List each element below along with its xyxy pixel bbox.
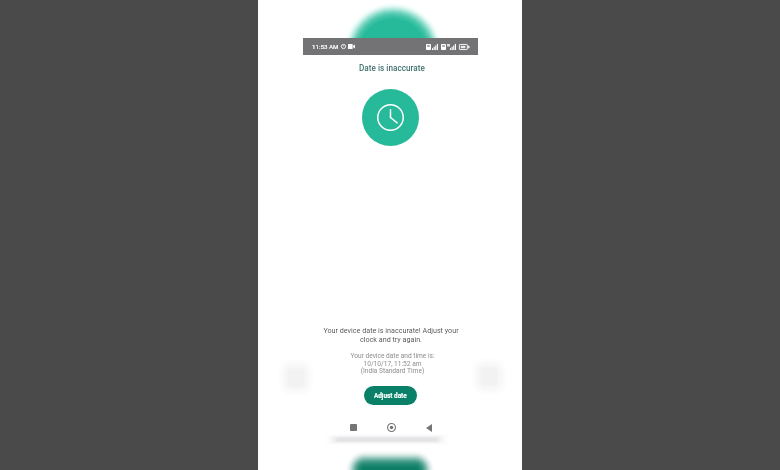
staticText: 11:53 AM: [312, 43, 339, 50]
button[interactable]: Recent apps: [335, 417, 371, 438]
button[interactable]: Adjust date: [364, 386, 417, 405]
staticText: Adjust date: [374, 392, 407, 400]
staticText: Your device date and time is: 10/10/17, …: [350, 352, 435, 374]
button[interactable]: Back: [411, 417, 447, 438]
button[interactable]: Home: [373, 417, 409, 438]
staticText: Your device date is inaccurate! Adjust y…: [315, 326, 467, 344]
staticText: Date is inaccurate: [359, 63, 425, 73]
